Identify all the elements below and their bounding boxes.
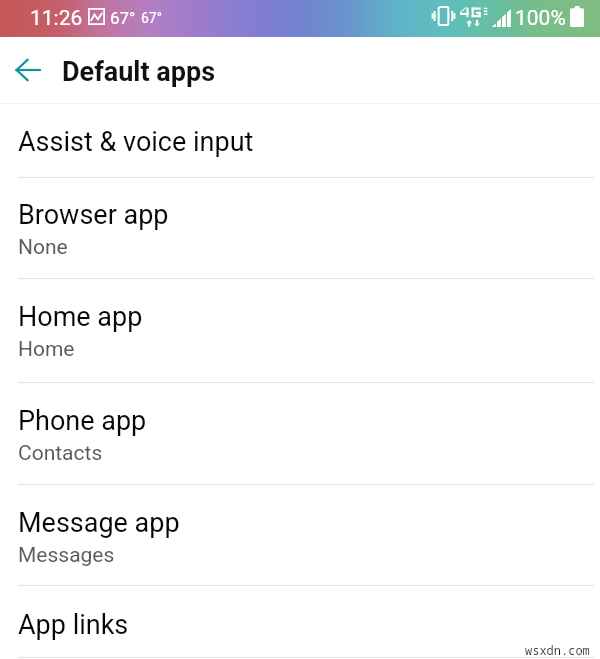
- staticText: 67°: [141, 10, 162, 26]
- staticText: Assist & voice input: [18, 126, 254, 158]
- button[interactable]: Home app: [0, 279, 600, 382]
- button[interactable]: Phone app: [0, 383, 600, 484]
- staticText: App links: [18, 609, 129, 641]
- staticText: None: [18, 235, 68, 260]
- button[interactable]: Back: [4, 37, 52, 103]
- button[interactable]: App links: [0, 586, 600, 657]
- staticText: Home app: [18, 301, 143, 333]
- button[interactable]: Browser app: [0, 178, 600, 278]
- staticText: Phone app: [18, 405, 147, 437]
- staticText: 11:26: [30, 6, 83, 31]
- staticText: Messages: [18, 543, 115, 568]
- button[interactable]: Assist & voice input: [0, 104, 600, 177]
- staticText: Message app: [18, 507, 180, 539]
- button[interactable]: Message app: [0, 485, 600, 585]
- staticText: 67°: [110, 8, 136, 28]
- staticText: Browser app: [18, 199, 169, 231]
- staticText: Contacts: [18, 441, 103, 466]
- staticText: 100%: [515, 6, 566, 31]
- staticText: Home: [18, 337, 75, 362]
- staticText: wsxdn.com: [525, 642, 590, 658]
- staticText: Default apps: [62, 56, 216, 88]
